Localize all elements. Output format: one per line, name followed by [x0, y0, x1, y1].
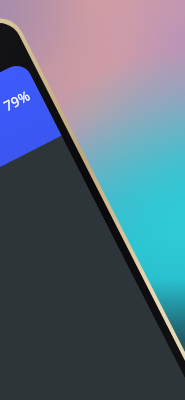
button[interactable]: Photo mockup of phone app screen — [0, 0, 185, 400]
